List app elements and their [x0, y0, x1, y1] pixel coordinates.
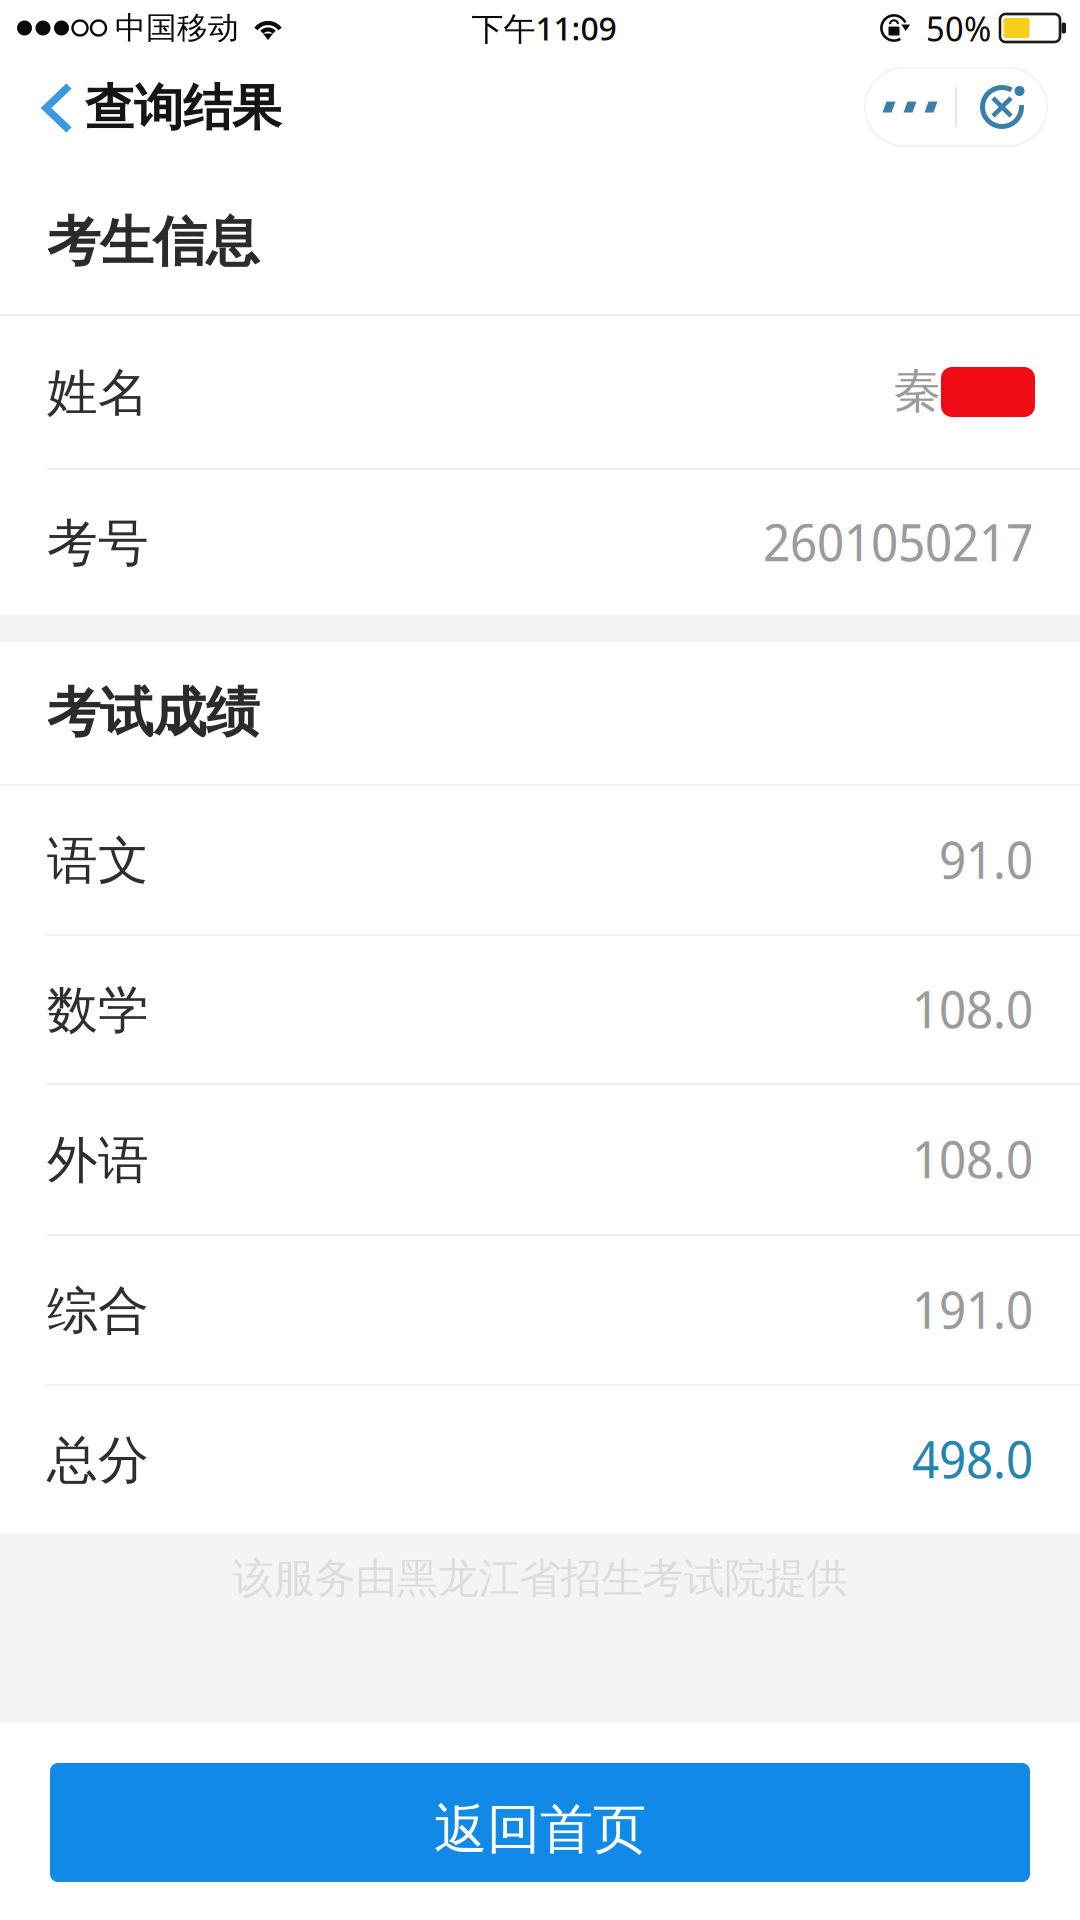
staticText: 考号 — [47, 512, 149, 575]
staticText: 考生信息 — [47, 209, 259, 275]
staticText: 综合 — [47, 1280, 149, 1342]
staticText: 考试成绩 — [47, 680, 259, 746]
button[interactable]: More — [865, 68, 955, 146]
staticText: 2601050217 — [763, 507, 1033, 576]
staticText: 数学 — [47, 979, 149, 1042]
staticText: 总分 — [47, 1429, 149, 1492]
staticText: 秦 — [893, 361, 941, 420]
staticText: 108.0 — [912, 974, 1033, 1043]
staticText: 查询结果 — [85, 78, 281, 138]
staticText: 返回首页 — [434, 1797, 646, 1862]
button[interactable]: 返回首页 — [50, 1763, 1030, 1882]
staticText: 姓名 — [47, 362, 149, 424]
staticText: 外语 — [47, 1129, 149, 1192]
staticText: 该服务由黑龙江省招生考试院提供 — [232, 1553, 847, 1604]
button[interactable]: 查询结果 — [0, 64, 281, 144]
staticText: 108.0 — [912, 1124, 1033, 1193]
staticText: 中国移动 — [115, 9, 239, 47]
staticText: 下午11:09 — [471, 7, 616, 49]
staticText: 语文 — [47, 830, 149, 892]
staticText: 498.0 — [912, 1424, 1033, 1493]
button[interactable]: Close mini program — [957, 68, 1047, 146]
staticText: 91.0 — [939, 824, 1033, 893]
staticText: 191.0 — [912, 1274, 1033, 1343]
staticText: 50% — [926, 4, 991, 52]
